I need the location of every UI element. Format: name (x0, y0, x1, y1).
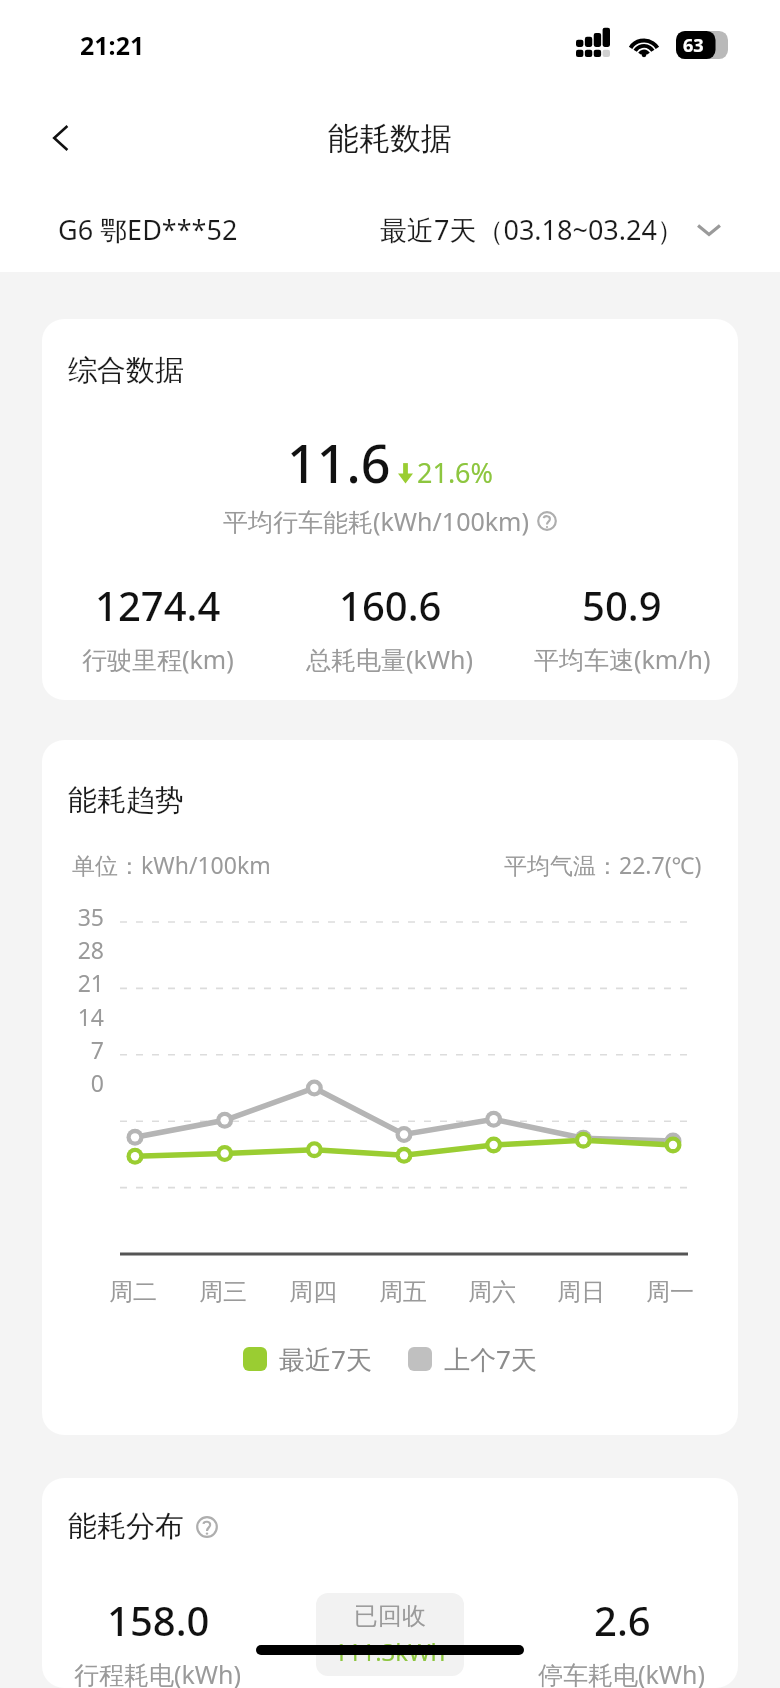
staticText: 周三 (199, 1277, 247, 1307)
button[interactable]: Back (30, 106, 94, 170)
staticText: 最近7天 (279, 1341, 372, 1377)
staticText: 上个7天 (444, 1341, 537, 1377)
staticText: G6 鄂ED***52 (58, 211, 238, 248)
staticText: 总耗电量(kWh) (306, 642, 474, 676)
staticText: 7 (60, 1034, 104, 1065)
staticText: 111.3kWh (334, 1635, 446, 1668)
staticText: 最近7天（03.18~03.24） (380, 211, 684, 248)
staticText: 63 (683, 33, 704, 58)
staticText: 平均行车能耗(kWh/100km) (223, 504, 529, 538)
button[interactable]: 上个7天 (408, 1341, 537, 1377)
staticText: 能耗趋势 (68, 782, 184, 819)
staticText: 158.0 (107, 1593, 210, 1647)
staticText: 11.6 (287, 427, 391, 498)
staticText: 21.6% (417, 454, 494, 491)
staticText: 平均车速(km/h) (534, 642, 711, 676)
staticText: 50.9 (582, 578, 662, 632)
staticText: 停车耗电(kWh) (538, 1657, 706, 1688)
staticText: 21 (60, 967, 104, 998)
staticText: 周五 (379, 1277, 427, 1307)
staticText: 1274.4 (95, 578, 221, 632)
staticText: 能耗数据 (328, 119, 452, 158)
staticText: 2.6 (594, 1593, 651, 1647)
button[interactable]: 50.9 (506, 578, 738, 676)
staticText: 平均气温：22.7(℃) (504, 849, 702, 880)
staticText: 周日 (557, 1277, 605, 1307)
staticText: 已回收 (354, 1601, 426, 1631)
staticText: 周六 (468, 1277, 516, 1307)
staticText: 单位：kWh/100km (72, 849, 271, 880)
staticText: 行程耗电(kWh) (74, 1657, 242, 1688)
staticText: 能耗分布 (68, 1508, 184, 1545)
button[interactable]: 最近7天 (243, 1341, 372, 1377)
staticText: 35 (60, 901, 104, 932)
staticText: 周四 (289, 1277, 337, 1307)
button[interactable]: 1274.4 (42, 578, 274, 676)
staticText: 160.6 (339, 578, 442, 632)
staticText: 行驶里程(km) (82, 642, 234, 676)
staticText: 28 (60, 934, 104, 965)
staticText: 21:21 (80, 28, 145, 62)
button[interactable]: 160.6 (274, 578, 506, 676)
staticText: 周一 (646, 1277, 694, 1307)
staticText: 综合数据 (68, 352, 184, 389)
staticText: 0 (60, 1067, 104, 1098)
staticText: 周二 (109, 1277, 157, 1307)
button[interactable]: 最近7天（03.18~03.24） (380, 211, 722, 248)
staticText: 14 (60, 1001, 104, 1032)
